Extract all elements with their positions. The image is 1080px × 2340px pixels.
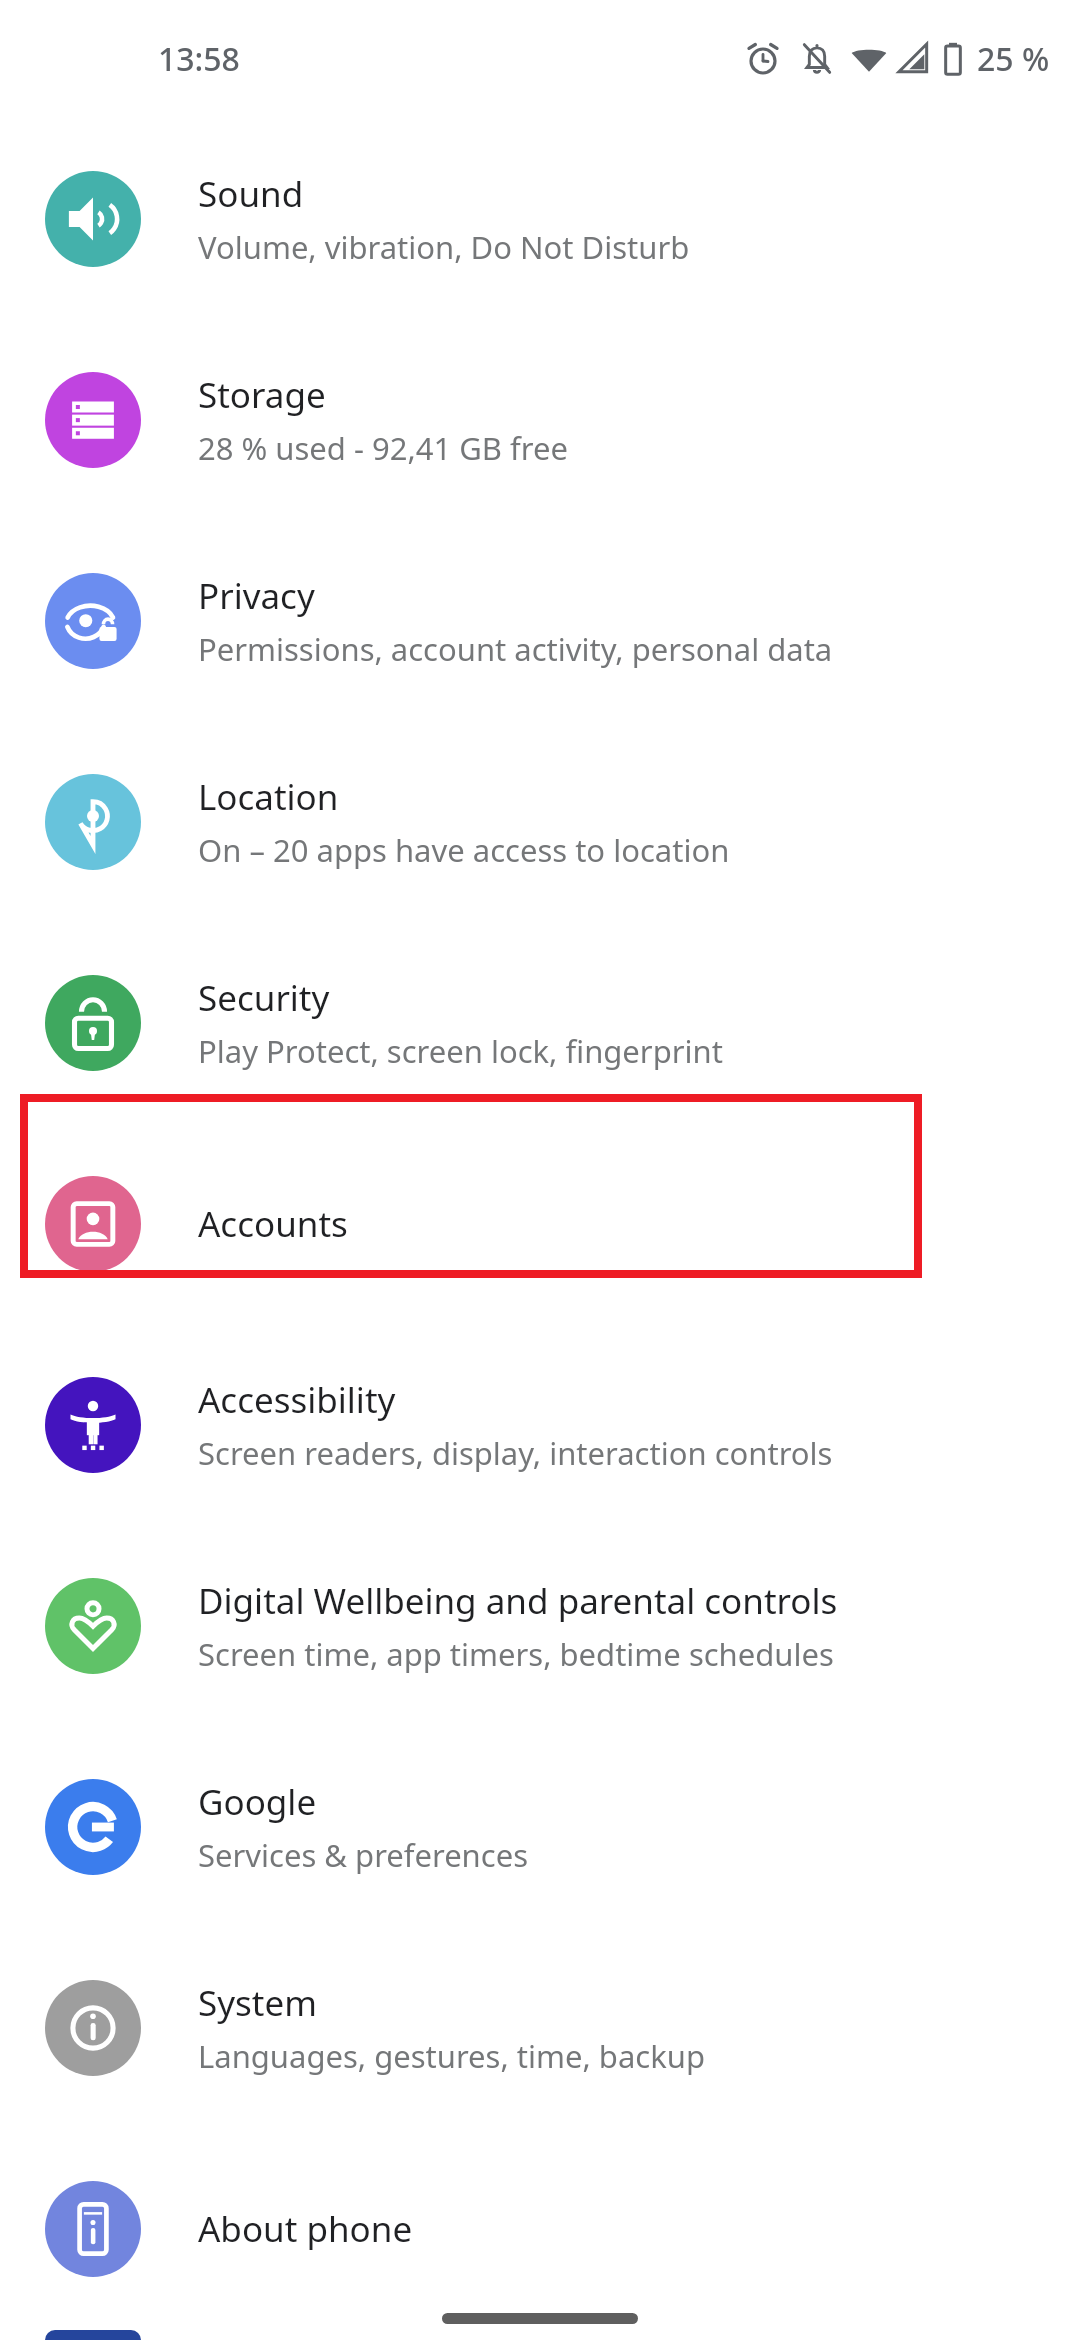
staticText: Digital Wellbeing and parental controls: [198, 1577, 838, 1625]
staticText: Languages, gestures, time, backup: [198, 2035, 705, 2077]
staticText: Google: [198, 1778, 317, 1826]
button[interactable]: Google: [0, 1726, 1080, 1927]
button[interactable]: Location: [0, 721, 1080, 922]
staticText: Accessibility: [198, 1376, 396, 1424]
staticText: Play Protect, screen lock, fingerprint: [198, 1030, 723, 1072]
staticText: Screen readers, display, interaction con…: [198, 1432, 833, 1474]
button[interactable]: Storage: [0, 319, 1080, 520]
staticText: Security: [198, 974, 330, 1022]
staticText: 25 %: [977, 37, 1050, 81]
staticText: Location: [198, 773, 339, 821]
button[interactable]: About phone: [0, 2128, 1080, 2329]
staticText: Storage: [198, 371, 326, 419]
button[interactable]: Sound: [0, 118, 1080, 319]
staticText: 13:58: [158, 37, 240, 81]
staticText: Sound: [198, 170, 304, 218]
staticText: Screen time, app timers, bedtime schedul…: [198, 1633, 834, 1675]
button[interactable]: Accessibility: [0, 1324, 1080, 1525]
staticText: On – 20 apps have access to location: [198, 829, 730, 871]
button[interactable]: Digital Wellbeing and parental controls: [0, 1525, 1080, 1726]
staticText: System: [198, 1979, 317, 2027]
button[interactable]: Accounts: [0, 1123, 1080, 1324]
staticText: Services & preferences: [198, 1834, 528, 1876]
staticText: Accounts: [198, 1200, 348, 1248]
button[interactable]: Privacy: [0, 520, 1080, 721]
staticText: About phone: [198, 2205, 413, 2253]
staticText: Privacy: [198, 572, 315, 620]
staticText: Permissions, account activity, personal …: [198, 628, 833, 670]
button[interactable]: Security: [0, 922, 1080, 1123]
staticText: 28 % used - 92,41 GB free: [198, 427, 568, 469]
staticText: Volume, vibration, Do Not Disturb: [198, 226, 690, 268]
button[interactable]: System: [0, 1927, 1080, 2128]
other: Home: [442, 2313, 638, 2324]
